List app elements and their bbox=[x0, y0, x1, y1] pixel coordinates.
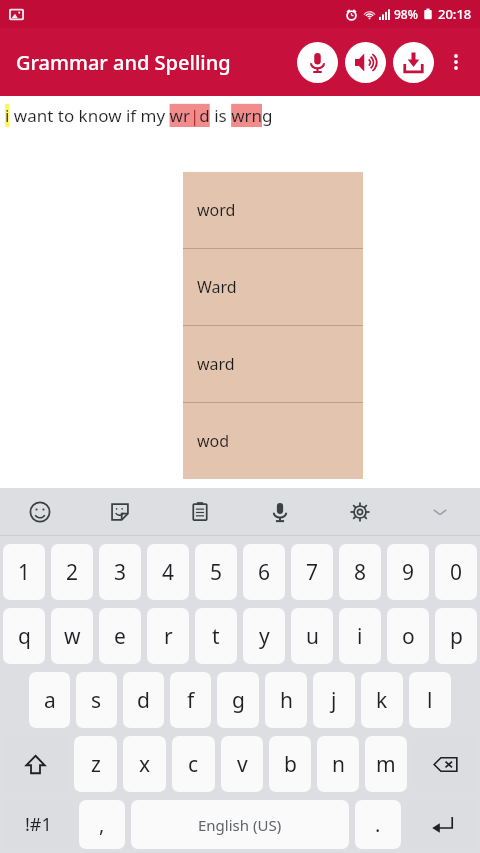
button[interactable]: b bbox=[269, 736, 311, 792]
button[interactable]: c bbox=[172, 736, 215, 792]
button[interactable]: h bbox=[265, 672, 307, 728]
button[interactable]: w bbox=[51, 608, 93, 664]
button[interactable]: English (US) bbox=[131, 800, 349, 849]
staticText: English (US) bbox=[198, 815, 282, 835]
button[interactable]: 6 bbox=[243, 544, 285, 600]
button[interactable]: 5 bbox=[195, 544, 237, 600]
staticText: o bbox=[402, 622, 415, 651]
button[interactable]: r bbox=[147, 608, 189, 664]
staticText: ward bbox=[197, 353, 235, 375]
staticText: l bbox=[427, 686, 433, 715]
staticText: e bbox=[114, 622, 126, 651]
button[interactable]: Read aloud bbox=[345, 42, 386, 83]
staticText: u bbox=[306, 622, 319, 651]
button[interactable]: a bbox=[29, 672, 70, 728]
staticText: 0 bbox=[450, 558, 463, 587]
button[interactable]: z bbox=[74, 736, 117, 792]
button[interactable]: Stickers bbox=[80, 488, 160, 535]
button[interactable]: q bbox=[3, 608, 45, 664]
button[interactable]: l bbox=[409, 672, 451, 728]
staticText: Ward bbox=[197, 276, 237, 298]
button[interactable]: Speak bbox=[297, 42, 338, 83]
staticText: t bbox=[212, 622, 220, 651]
button[interactable]: wod bbox=[183, 403, 363, 479]
button[interactable]: Voice input bbox=[240, 488, 320, 535]
staticText: v bbox=[237, 750, 248, 779]
staticText: 9 bbox=[402, 558, 415, 587]
staticText: 6 bbox=[258, 558, 271, 587]
button[interactable]: 9 bbox=[387, 544, 429, 600]
staticText: . bbox=[375, 811, 381, 838]
staticText: s bbox=[91, 686, 102, 715]
button[interactable]: , bbox=[79, 800, 125, 849]
button[interactable]: 2 bbox=[51, 544, 93, 600]
staticText: f bbox=[187, 686, 195, 715]
button[interactable]: t bbox=[195, 608, 237, 664]
staticText: g bbox=[232, 686, 245, 715]
staticText: a bbox=[44, 686, 56, 715]
button[interactable]: ward bbox=[183, 326, 363, 402]
staticText: j bbox=[331, 686, 337, 715]
button[interactable]: 3 bbox=[99, 544, 141, 600]
button[interactable]: Clipboard bbox=[160, 488, 240, 535]
staticText: h bbox=[280, 686, 293, 715]
staticText: 20:18 bbox=[438, 5, 472, 23]
button[interactable]: u bbox=[291, 608, 333, 664]
staticText: w bbox=[64, 622, 81, 651]
button[interactable]: 7 bbox=[291, 544, 333, 600]
staticText: b bbox=[284, 750, 297, 779]
button[interactable]: Ward bbox=[183, 249, 363, 325]
staticText: y bbox=[259, 622, 270, 651]
button[interactable]: x bbox=[123, 736, 166, 792]
button[interactable]: p bbox=[435, 608, 477, 664]
button[interactable]: word bbox=[183, 172, 363, 248]
staticText: , bbox=[99, 811, 105, 838]
staticText: i bbox=[357, 622, 363, 651]
button[interactable]: 0 bbox=[435, 544, 477, 600]
staticText: i want to know if my wr|d is wrng bbox=[5, 104, 273, 127]
button[interactable]: e bbox=[99, 608, 141, 664]
button[interactable]: k bbox=[361, 672, 403, 728]
staticText: x bbox=[139, 750, 151, 779]
staticText: p bbox=[450, 622, 463, 651]
button[interactable]: Enter bbox=[407, 800, 477, 849]
button[interactable]: 4 bbox=[147, 544, 189, 600]
staticText: c bbox=[188, 750, 199, 779]
staticText: 2 bbox=[66, 558, 79, 587]
staticText: r bbox=[164, 622, 173, 651]
button[interactable]: Emoji bbox=[0, 488, 80, 535]
staticText: d bbox=[137, 686, 150, 715]
button[interactable]: n bbox=[317, 736, 359, 792]
button[interactable]: d bbox=[123, 672, 164, 728]
button[interactable]: f bbox=[170, 672, 211, 728]
button[interactable]: More options bbox=[438, 44, 474, 80]
button[interactable]: i bbox=[339, 608, 381, 664]
staticText: k bbox=[376, 686, 388, 715]
button[interactable]: Backspace bbox=[413, 736, 477, 792]
button[interactable]: Hide keyboard bbox=[400, 488, 480, 535]
button[interactable]: Settings bbox=[320, 488, 400, 535]
button[interactable]: v bbox=[221, 736, 263, 792]
staticText: !#1 bbox=[25, 812, 52, 837]
button[interactable]: j bbox=[313, 672, 355, 728]
staticText: 4 bbox=[162, 558, 175, 587]
staticText: 7 bbox=[306, 558, 319, 587]
staticText: word bbox=[197, 199, 236, 221]
button[interactable]: m bbox=[365, 736, 407, 792]
button[interactable]: 1 bbox=[3, 544, 45, 600]
staticText: 1 bbox=[18, 558, 31, 587]
button[interactable]: !#1 bbox=[3, 800, 73, 849]
staticText: z bbox=[91, 750, 101, 779]
button[interactable]: Shift bbox=[3, 736, 68, 792]
button[interactable]: o bbox=[387, 608, 429, 664]
button[interactable]: 8 bbox=[339, 544, 381, 600]
staticText: 5 bbox=[210, 558, 223, 587]
staticText: 3 bbox=[114, 558, 127, 587]
button[interactable]: g bbox=[217, 672, 259, 728]
button[interactable]: . bbox=[355, 800, 401, 849]
button[interactable]: s bbox=[76, 672, 117, 728]
button[interactable]: Download bbox=[393, 42, 434, 83]
button[interactable]: y bbox=[243, 608, 285, 664]
staticText: 8 bbox=[354, 558, 367, 587]
staticText: 98% bbox=[394, 6, 418, 22]
